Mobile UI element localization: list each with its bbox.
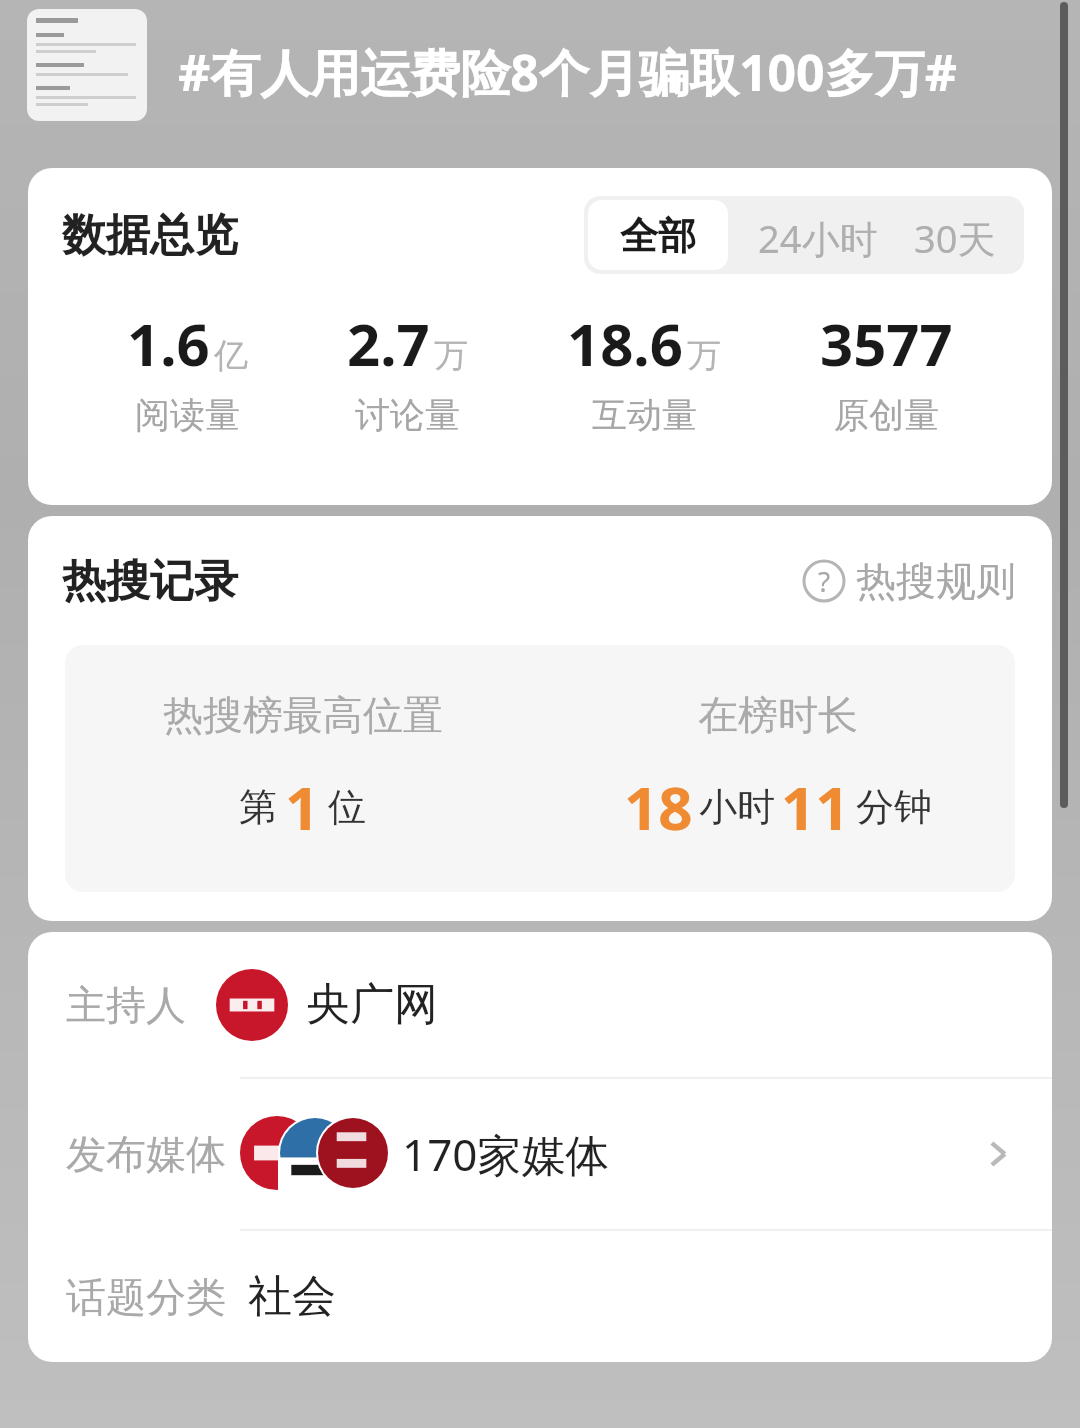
staticText: 24小时 [758, 212, 878, 258]
staticText: #有人用运费险8个月骗取100多万# [178, 38, 957, 106]
staticText: 发布媒体 [66, 1129, 226, 1179]
staticText: 亿 [214, 334, 248, 377]
staticText: 2.7 [347, 304, 430, 383]
staticText: 11 [781, 766, 850, 848]
staticText: 万 [687, 334, 721, 377]
staticText: 170家媒体 [402, 1124, 610, 1184]
button[interactable]: 全部 [588, 200, 728, 270]
button[interactable]: ? [796, 550, 1022, 612]
staticText: 主持人 [66, 980, 186, 1030]
staticText: 话题分类 [66, 1272, 226, 1322]
staticText: 位 [328, 783, 366, 831]
staticText: 分钟 [856, 783, 932, 831]
staticText: 数据总览 [62, 208, 238, 263]
staticText: 热搜规则 [856, 556, 1016, 606]
staticText: 在榜时长 [698, 690, 858, 740]
staticText: 小时 [699, 783, 775, 831]
button[interactable]: 30天 [904, 196, 1024, 274]
staticText: 央广网 [306, 977, 438, 1032]
staticText: 第 [239, 783, 277, 831]
staticText: 18 [624, 766, 693, 848]
button[interactable]: 主持人 [28, 932, 1052, 1077]
button[interactable]: 话题分类 [28, 1231, 1052, 1362]
button[interactable]: 发布媒体 [28, 1079, 1052, 1229]
staticText: 全部 [620, 212, 696, 258]
staticText: 18.6 [567, 304, 683, 383]
staticText: 讨论量 [355, 393, 460, 437]
staticText: 1 [285, 766, 320, 848]
staticText: 原创量 [834, 393, 939, 437]
staticText: ? [818, 562, 831, 600]
staticText: 1.6 [127, 304, 210, 383]
staticText: 阅读量 [135, 393, 240, 437]
staticText: 互动量 [592, 393, 697, 437]
staticText: 万 [434, 334, 468, 377]
staticText: 热搜记录 [62, 554, 238, 609]
staticText: 社会 [248, 1269, 336, 1324]
staticText: 3577 [820, 304, 953, 383]
other: 查看发布媒体 [974, 1130, 1022, 1178]
button[interactable]: 24小时 [732, 196, 904, 274]
staticText: 热搜榜最高位置 [163, 690, 443, 740]
staticText: 30天 [914, 212, 996, 258]
